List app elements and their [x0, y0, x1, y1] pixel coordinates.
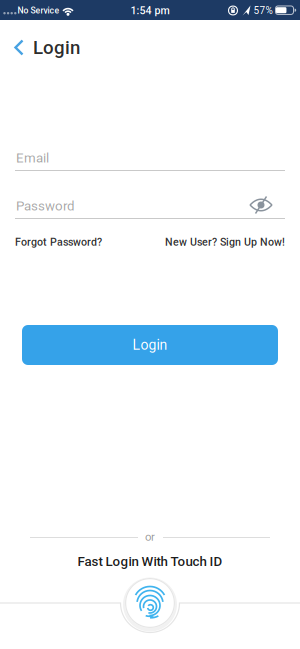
button[interactable]: Email: [0, 147, 300, 169]
button[interactable]: Forgot Password?: [15, 236, 102, 248]
staticText: 1:54 pm: [130, 4, 169, 17]
button[interactable]: Show password: [249, 196, 273, 214]
staticText: No Service: [17, 5, 59, 16]
staticText: Email: [16, 150, 49, 166]
button[interactable]: New User? Sign Up Now!: [165, 236, 285, 248]
staticText: New User? Sign Up Now!: [165, 236, 285, 248]
staticText: Password: [16, 198, 75, 214]
button[interactable]: Password: [0, 195, 300, 217]
staticText: Login: [132, 337, 167, 353]
staticText: Fast Login With Touch ID: [77, 554, 222, 569]
button[interactable]: Login: [22, 325, 278, 365]
staticText: Forgot Password?: [15, 236, 102, 248]
button[interactable]: Log in with Touch ID: [123, 576, 177, 630]
staticText: 57%: [253, 5, 272, 16]
staticText: Login: [33, 37, 80, 58]
staticText: or: [145, 530, 155, 544]
button[interactable]: Back: [14, 40, 24, 55]
